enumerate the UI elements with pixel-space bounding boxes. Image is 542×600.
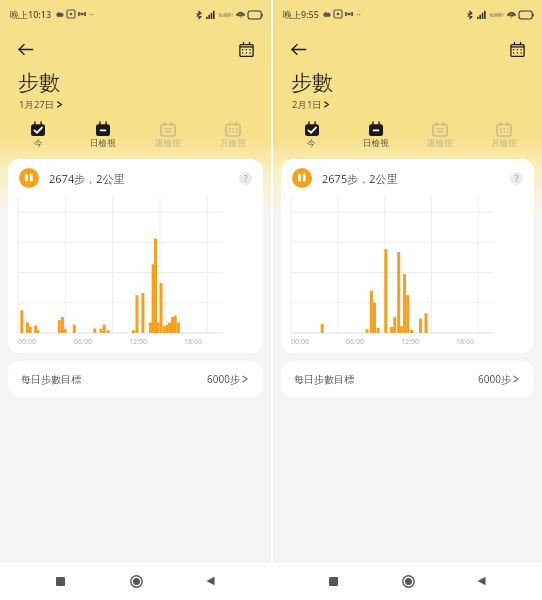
staticText: 06:00 [74,337,92,347]
button[interactable]: 週檢視 [408,120,472,151]
button[interactable]: 每日步數目標 [281,361,534,397]
button[interactable]: 月檢視 [472,120,536,151]
staticText: ·· [356,8,361,20]
staticText: 每日步數目標 [294,373,354,386]
staticText: 2月1日 [292,98,322,111]
button[interactable]: 今 [6,120,70,151]
button[interactable]: Recents [45,566,75,596]
button[interactable]: Calendar [502,34,532,64]
staticText: 18:00 [456,337,474,347]
button[interactable]: 每日步數目標 [8,361,263,397]
staticText: 日檢視 [363,138,389,149]
staticText: 1月27日 [19,98,55,111]
button[interactable]: Back [10,34,40,64]
staticText: 2674步，2公里 [49,171,125,186]
staticText: 步數 [291,70,333,96]
staticText: 18:00 [184,337,202,347]
button[interactable]: 1月27日 [19,98,64,111]
button[interactable]: Help [510,172,523,185]
button[interactable]: Calendar [231,34,261,64]
staticText: 12:00 [129,337,147,347]
button[interactable]: Home [121,566,151,596]
staticText: ? [515,173,519,184]
staticText: VoWiFi [218,12,233,18]
staticText: 12:00 [401,337,419,347]
staticText: 週檢視 [155,138,181,149]
staticText: 今 [34,138,43,149]
staticText: 日檢視 [90,138,116,149]
button[interactable]: Back [196,566,226,596]
staticText: 6000步 [207,372,240,386]
button[interactable]: Recents [318,566,348,596]
staticText: 步數 [18,70,60,96]
staticText: 月檢視 [491,138,517,149]
staticText: 今 [307,138,316,149]
staticText: 06:00 [346,337,364,347]
button[interactable]: 月檢視 [200,120,265,151]
staticText: 2675步，2公里 [322,171,398,186]
button[interactable]: 日檢視 [70,120,135,151]
staticText: 6000步 [478,372,511,386]
button[interactable]: 週檢視 [135,120,200,151]
staticText: 晚上10:13 [10,8,52,20]
staticText: 每日步數目標 [21,373,81,386]
button[interactable]: Back [283,34,313,64]
staticText: ·· [89,8,94,20]
staticText: 週檢視 [427,138,453,149]
button[interactable]: 2月1日 [292,98,331,111]
button[interactable]: Back [467,566,497,596]
staticText: ? [244,173,248,184]
staticText: 晚上9:55 [283,8,319,20]
staticText: 00:00 [18,337,36,347]
button[interactable]: Help [239,172,252,185]
button[interactable]: Home [393,566,423,596]
staticText: 月檢視 [220,138,246,149]
button[interactable]: 今 [279,120,344,151]
staticText: 00:00 [291,337,309,347]
staticText: VoWiFi [489,12,504,18]
button[interactable]: 日檢視 [344,120,408,151]
